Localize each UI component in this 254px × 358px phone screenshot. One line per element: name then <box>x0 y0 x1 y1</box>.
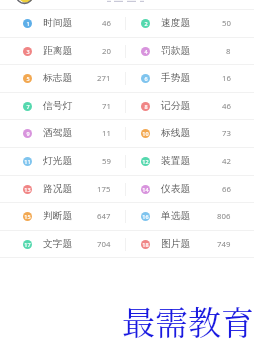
staticText: 17 <box>24 241 31 248</box>
button[interactable]: 10 <box>125 119 254 147</box>
staticText: 71 <box>102 101 111 112</box>
staticText: 最需教育 <box>122 297 254 344</box>
staticText: 749 <box>217 239 231 250</box>
staticText: 10 <box>142 130 149 137</box>
button[interactable]: 6 <box>125 64 254 92</box>
staticText: 15 <box>24 213 31 220</box>
staticText: 42 <box>222 156 231 167</box>
staticText: 记分题 <box>161 100 191 112</box>
staticText: 3 <box>26 48 30 55</box>
staticText: 手势题 <box>161 72 191 84</box>
staticText: 酒驾题 <box>43 127 73 139</box>
staticText: 6 <box>144 75 148 82</box>
button[interactable]: 7 <box>0 92 125 120</box>
staticText: 8 <box>144 103 148 110</box>
staticText: 2 <box>144 20 148 27</box>
staticText: 距离题 <box>43 45 73 57</box>
staticText: 单选题 <box>161 210 191 222</box>
staticText: 速度题 <box>161 17 191 29</box>
staticText: 704 <box>97 239 111 250</box>
staticText: 13 <box>24 186 31 193</box>
button[interactable]: 8 <box>125 92 254 120</box>
staticText: 271 <box>97 73 111 84</box>
staticText: 647 <box>97 211 111 222</box>
button[interactable]: 14 <box>125 175 254 203</box>
staticText: 7 <box>26 103 30 110</box>
button[interactable]: 2 <box>125 9 254 37</box>
staticText: 标志题 <box>43 72 73 84</box>
staticText: 罚款题 <box>161 45 191 57</box>
button[interactable]: 11 <box>0 147 125 175</box>
button[interactable]: 9 <box>0 119 125 147</box>
staticText: 图片题 <box>161 238 191 250</box>
button[interactable]: 16 <box>125 202 254 230</box>
staticText: 66 <box>222 184 231 195</box>
staticText: 50 <box>222 18 231 29</box>
staticText: 18 <box>142 241 149 248</box>
staticText: 16 <box>222 73 231 84</box>
staticText: 路况题 <box>43 183 73 195</box>
staticText: 4 <box>144 48 148 55</box>
staticText: 59 <box>102 156 111 167</box>
button[interactable]: 15 <box>0 202 125 230</box>
staticText: 信号灯 <box>43 100 73 112</box>
staticText: 9 <box>26 130 30 137</box>
staticText: 5 <box>26 75 30 82</box>
button[interactable]: 17 <box>0 230 125 258</box>
staticText: 灯光题 <box>43 155 73 167</box>
button[interactable]: 18 <box>125 230 254 258</box>
staticText: 装置题 <box>161 155 191 167</box>
staticText: 73 <box>222 128 231 139</box>
staticText: 11 <box>24 158 31 165</box>
staticText: 1 <box>26 20 30 27</box>
staticText: 14 <box>142 186 149 193</box>
button[interactable]: 12 <box>125 147 254 175</box>
staticText: 判断题 <box>43 210 73 222</box>
staticText: 20 <box>102 46 111 57</box>
staticText: 16 <box>142 213 149 220</box>
button[interactable]: 13 <box>0 175 125 203</box>
staticText: 175 <box>97 184 111 195</box>
button[interactable]: 3 <box>0 37 125 65</box>
staticText: 8 <box>226 46 231 57</box>
staticText: 46 <box>222 101 231 112</box>
button[interactable]: 5 <box>0 64 125 92</box>
staticText: 仪表题 <box>161 183 191 195</box>
staticText: 标线题 <box>161 127 191 139</box>
staticText: 806 <box>217 211 231 222</box>
staticText: 时间题 <box>43 17 73 29</box>
staticText: 12 <box>142 158 149 165</box>
staticText: 文字题 <box>43 238 73 250</box>
button[interactable]: 4 <box>125 37 254 65</box>
staticText: 11 <box>102 128 111 139</box>
staticText: 46 <box>102 18 111 29</box>
button[interactable]: 1 <box>0 9 125 37</box>
